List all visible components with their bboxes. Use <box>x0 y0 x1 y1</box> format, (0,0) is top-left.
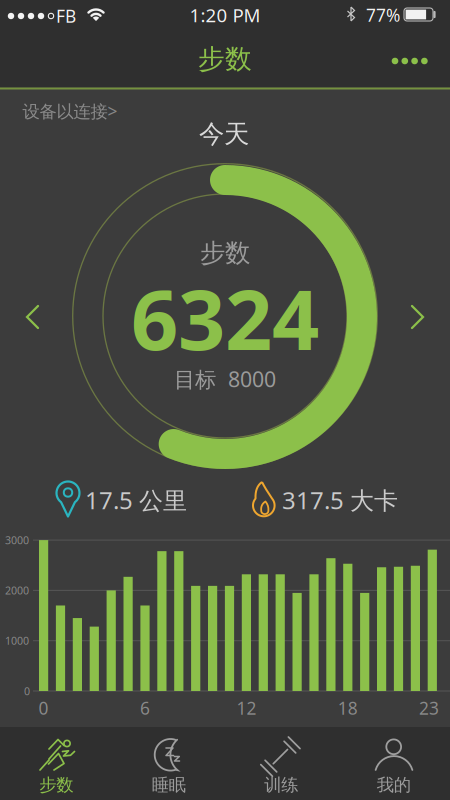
staticText: 我的 <box>377 774 411 796</box>
staticText: 步数 <box>200 237 250 268</box>
button[interactable]: Previous day <box>24 304 42 330</box>
staticText: 步数 <box>198 43 252 75</box>
staticText: 17.5 公里 <box>85 484 187 516</box>
button[interactable]: 我的 <box>337 727 450 800</box>
staticText: 1:20 PM <box>189 3 260 27</box>
button[interactable]: 设备以连接> <box>22 99 117 122</box>
staticText: 12 <box>236 696 256 719</box>
staticText: 今天 <box>199 118 249 149</box>
staticText: 23 <box>419 696 439 719</box>
staticText: 1000 <box>5 633 29 648</box>
staticText: 3000 <box>5 533 29 547</box>
button[interactable]: 步数 <box>0 727 112 800</box>
staticText: 6 <box>140 696 150 719</box>
staticText: 目标 8000 <box>174 365 276 393</box>
staticText: 0 <box>38 696 48 719</box>
staticText: 睡眠 <box>152 774 186 796</box>
button[interactable]: More <box>390 55 430 67</box>
staticText: 0 <box>24 684 30 698</box>
staticText: 18 <box>338 696 358 719</box>
staticText: 2000 <box>5 583 29 597</box>
staticText: 6324 <box>131 263 319 373</box>
staticText: FB <box>56 4 76 27</box>
staticText: 77% <box>366 3 400 26</box>
button[interactable]: 睡眠 <box>112 727 225 800</box>
staticText: 步数 <box>39 774 73 796</box>
button[interactable]: 训练 <box>225 727 337 800</box>
staticText: 设备以连接> <box>22 99 117 122</box>
staticText: 训练 <box>264 774 298 796</box>
staticText: 317.5 大卡 <box>282 484 398 516</box>
button[interactable]: Next day <box>408 304 426 330</box>
